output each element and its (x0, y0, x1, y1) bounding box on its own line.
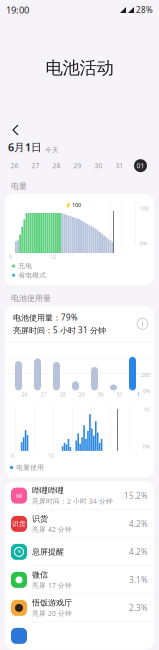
staticText: 31 (116, 391, 122, 398)
staticText: 电量使用 (16, 463, 44, 472)
button[interactable]: 29 (67, 158, 88, 173)
staticText: 10 (143, 406, 149, 413)
button[interactable]: bili (5, 482, 154, 510)
staticText: 省电模式 (18, 271, 46, 279)
staticText: i (141, 319, 143, 328)
staticText: 01 (136, 161, 144, 170)
staticText: 29 (78, 391, 84, 398)
staticText: bili (16, 492, 22, 499)
staticText: 26 (21, 391, 27, 398)
button[interactable]: 01 (130, 158, 151, 173)
button[interactable]: 悟饭游戏厅 (5, 594, 154, 622)
staticText: 电池使用量：79% (13, 312, 78, 323)
staticText: 4.2% (129, 547, 148, 557)
staticText: 2.3% (129, 603, 148, 613)
staticText: 亮屏时间：5 小时 31 分钟 (13, 325, 106, 335)
staticText: 亮屏 20 分钟 (32, 609, 72, 618)
button[interactable]: 识货 (5, 510, 154, 538)
staticText: 0% (142, 443, 149, 450)
staticText: 29 (73, 161, 81, 170)
button[interactable]: 微信 (5, 566, 154, 594)
staticText: 悟饭游戏厅 (32, 598, 72, 608)
staticText: ⚡100 (65, 201, 81, 209)
staticText: 27 (40, 391, 46, 398)
staticText: 0 (11, 452, 14, 459)
staticText: 27 (31, 161, 39, 170)
staticText: 亮屏 17 分钟 (32, 581, 72, 590)
staticText: 12 (48, 452, 54, 459)
staticText: 电池活动 (45, 57, 113, 79)
button[interactable]: 30 (88, 158, 109, 173)
staticText: 100 (139, 205, 148, 212)
staticText: 4.2% (129, 519, 148, 529)
staticText: 28 (59, 391, 65, 398)
button[interactable]: 返回 (0, 121, 24, 137)
staticText: 6月1日 (8, 140, 42, 154)
staticText: 亮屏 42 分钟 (32, 525, 72, 534)
button[interactable]: 26 (4, 158, 25, 173)
staticText: 28 (52, 161, 60, 170)
staticText: 26 (10, 161, 18, 170)
staticText: 0% (143, 387, 150, 394)
staticText: 识货 (12, 520, 26, 528)
button[interactable]: 31 (109, 158, 130, 173)
staticText: 15.2% (124, 490, 148, 501)
button[interactable]: 28 (46, 158, 67, 173)
staticText: 0 (9, 253, 12, 260)
staticText: 微信 (32, 570, 48, 580)
staticText: 充电 (18, 262, 32, 270)
staticText: 1 (137, 391, 140, 398)
staticText: 亮屏时间：2 小时 34 分钟 (32, 497, 113, 505)
staticText: 今天 (45, 146, 59, 154)
staticText: 0% (139, 240, 146, 247)
staticText: 200 (141, 371, 150, 378)
staticText: 12 (50, 253, 56, 260)
staticText: 31 (115, 161, 123, 170)
staticText: 28% (136, 5, 153, 15)
button[interactable]: 说明 (137, 318, 148, 329)
staticText: 19:00 (6, 4, 29, 16)
staticText: 哔哩哔哩 (32, 486, 64, 496)
button[interactable]: 27 (25, 158, 46, 173)
button[interactable] (5, 622, 154, 650)
staticText: 30 (94, 161, 102, 170)
button[interactable]: 息屏提醒 (5, 538, 154, 566)
staticText: 电池使用量 (11, 293, 51, 303)
staticText: 息屏提醒 (32, 547, 64, 557)
staticText: 电量 (11, 181, 27, 191)
staticText: 3.1% (129, 575, 148, 585)
staticText: 30 (97, 391, 103, 398)
staticText: 识货 (32, 514, 48, 524)
